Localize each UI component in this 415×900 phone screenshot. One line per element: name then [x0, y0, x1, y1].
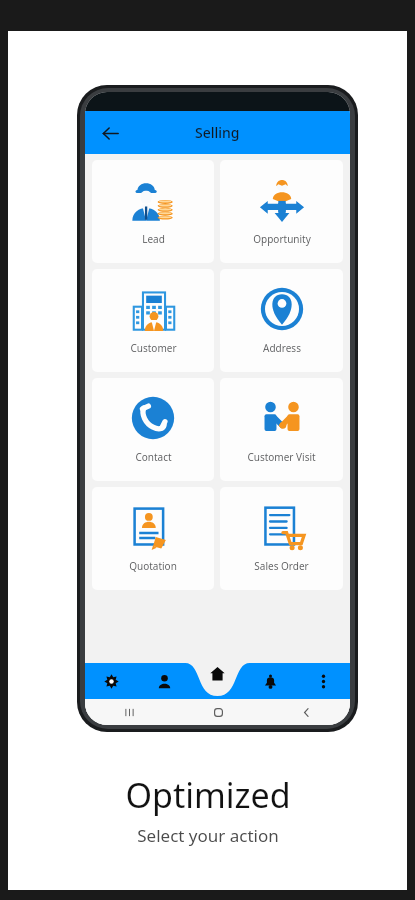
button[interactable]: Opportunity: [220, 160, 343, 263]
button[interactable]: Profile: [138, 663, 191, 699]
button[interactable]: Back: [95, 118, 125, 148]
staticText: Selling: [195, 123, 240, 142]
staticText: Quotation: [129, 559, 177, 573]
staticText: Lead: [142, 232, 165, 246]
staticText: Customer: [130, 341, 177, 355]
staticText: Contact: [135, 450, 172, 464]
staticText: Sales Order: [254, 559, 309, 573]
button[interactable]: Address: [220, 269, 343, 372]
staticText: Address: [263, 341, 301, 355]
staticText: Opportunity: [253, 232, 311, 246]
button[interactable]: Customer: [92, 269, 214, 372]
staticText: Customer Visit: [247, 450, 316, 464]
button[interactable]: Customer Visit: [220, 378, 343, 481]
button[interactable]: Home: [191, 663, 244, 699]
button[interactable]: Quotation: [92, 487, 214, 590]
button[interactable]: Sales Order: [220, 487, 343, 590]
button[interactable]: Notifications: [244, 663, 297, 699]
staticText: Optimized: [125, 772, 291, 818]
staticText: Select your action: [137, 824, 279, 847]
button[interactable]: Contact: [92, 378, 214, 481]
button[interactable]: Settings: [85, 663, 138, 699]
button[interactable]: More: [297, 663, 350, 699]
button[interactable]: Lead: [92, 160, 214, 263]
